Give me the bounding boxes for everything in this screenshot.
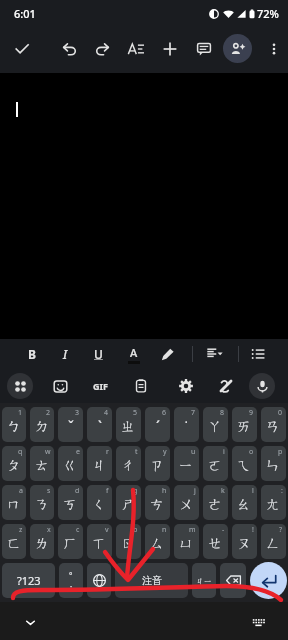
button[interactable]: 1 — [2, 407, 26, 442]
button[interactable]: ! — [232, 524, 257, 559]
button[interactable]: Done — [10, 37, 34, 61]
button[interactable]: Insert — [158, 37, 182, 61]
button[interactable]: o — [232, 446, 257, 481]
staticText: I — [63, 346, 68, 362]
button[interactable]: : — [261, 485, 286, 520]
staticText: a — [19, 486, 23, 496]
staticText: d — [75, 486, 80, 496]
button[interactable]: v — [87, 524, 112, 559]
button[interactable]: s — [30, 485, 54, 520]
button[interactable]: A — [123, 343, 145, 365]
button[interactable]: t — [116, 446, 141, 481]
staticText: z — [19, 525, 23, 535]
button[interactable]: 5 — [116, 407, 141, 442]
button[interactable]: g — [116, 485, 141, 520]
button[interactable]: Punctuation 2 — [192, 563, 216, 598]
staticText: : — [281, 486, 283, 496]
button[interactable]: Enter — [250, 562, 287, 599]
button[interactable]: Symbols — [2, 563, 55, 598]
button[interactable]: 8 — [203, 407, 228, 442]
button[interactable]: q — [2, 446, 26, 481]
button[interactable]: Text formatting — [124, 37, 148, 61]
staticText: ㄚ — [208, 418, 223, 436]
button[interactable]: w — [30, 446, 54, 481]
button[interactable]: Apps — [7, 373, 33, 399]
button[interactable]: Clipboard — [129, 374, 153, 398]
button[interactable]: m — [174, 524, 199, 559]
staticText: ㄨ — [179, 496, 194, 514]
button[interactable]: 9 — [232, 407, 257, 442]
button[interactable]: Comment — [192, 37, 216, 61]
button[interactable]: Handwriting — [214, 374, 238, 398]
button[interactable]: Stickers — [48, 374, 72, 398]
button[interactable]: k — [203, 485, 228, 520]
button[interactable]: z — [2, 524, 26, 559]
button[interactable]: Backspace — [220, 563, 246, 598]
button[interactable]: Align — [204, 343, 226, 365]
button[interactable]: More options — [262, 37, 286, 61]
button[interactable]: 6 — [145, 407, 170, 442]
staticText: ㄥ — [266, 535, 281, 553]
staticText: ㄘ — [150, 496, 165, 514]
staticText: ㄙ — [150, 535, 165, 553]
staticText: ㄎ — [63, 496, 78, 514]
button[interactable]: x — [30, 524, 54, 559]
button[interactable]: B — [22, 344, 42, 364]
staticText: ㄍ — [63, 457, 78, 475]
staticText: h — [162, 486, 167, 496]
button[interactable]: r — [87, 446, 112, 481]
staticText: ˙ — [185, 417, 188, 436]
button[interactable]: e — [58, 446, 83, 481]
button[interactable]: List — [247, 343, 269, 365]
staticText: ㄢ — [266, 418, 281, 436]
button[interactable]: I — [55, 344, 75, 364]
staticText: ㄓ — [121, 418, 136, 436]
button[interactable]: u — [174, 446, 199, 481]
staticText: w — [45, 447, 51, 457]
button[interactable]: h — [145, 485, 170, 520]
button[interactable]: j — [174, 485, 199, 520]
button[interactable]: a — [2, 485, 26, 520]
staticText: ㄕ — [121, 496, 136, 514]
button[interactable]: Punctuation — [59, 563, 83, 598]
button[interactable]: Hide keyboard — [20, 612, 40, 632]
button[interactable]: f — [87, 485, 112, 520]
button[interactable]: Space — [115, 563, 188, 598]
button[interactable]: c — [58, 524, 83, 559]
button[interactable]: 2 — [30, 407, 54, 442]
button[interactable]: ? — [261, 524, 286, 559]
button[interactable]: i — [203, 446, 228, 481]
button[interactable]: Share — [223, 34, 252, 63]
button[interactable]: d — [58, 485, 83, 520]
staticText: y — [163, 447, 167, 457]
button[interactable]: U — [88, 344, 108, 364]
staticText: 0 — [278, 408, 283, 418]
staticText: v — [105, 525, 109, 535]
staticText: 9 — [249, 408, 254, 418]
button[interactable]: l — [232, 485, 257, 520]
staticText: ㄐㄧ — [196, 576, 213, 586]
staticText: A — [130, 345, 138, 360]
button[interactable]: Undo — [58, 37, 82, 61]
button[interactable]: b — [116, 524, 141, 559]
button[interactable]: p — [261, 446, 286, 481]
button[interactable]: 3 — [58, 407, 83, 442]
button[interactable]: - — [203, 524, 228, 559]
button[interactable]: n — [145, 524, 170, 559]
button[interactable]: 4 — [87, 407, 112, 442]
button[interactable]: Highlight — [158, 344, 178, 364]
staticText: i — [223, 447, 225, 457]
button[interactable]: Redo — [94, 41, 110, 57]
button[interactable]: Voice input — [249, 373, 275, 399]
staticText: ㄖ — [121, 535, 136, 553]
button[interactable]: Settings — [174, 374, 198, 398]
button[interactable]: 0 — [261, 407, 286, 442]
staticText: p — [278, 447, 283, 457]
button[interactable]: Switch keyboard — [248, 612, 268, 632]
button[interactable]: 7 — [174, 407, 199, 442]
staticText: 1 — [18, 408, 23, 418]
button[interactable]: GIF — [88, 374, 112, 398]
button[interactable]: Change language — [87, 563, 111, 598]
button[interactable]: y — [145, 446, 170, 481]
staticText: e — [76, 447, 80, 457]
